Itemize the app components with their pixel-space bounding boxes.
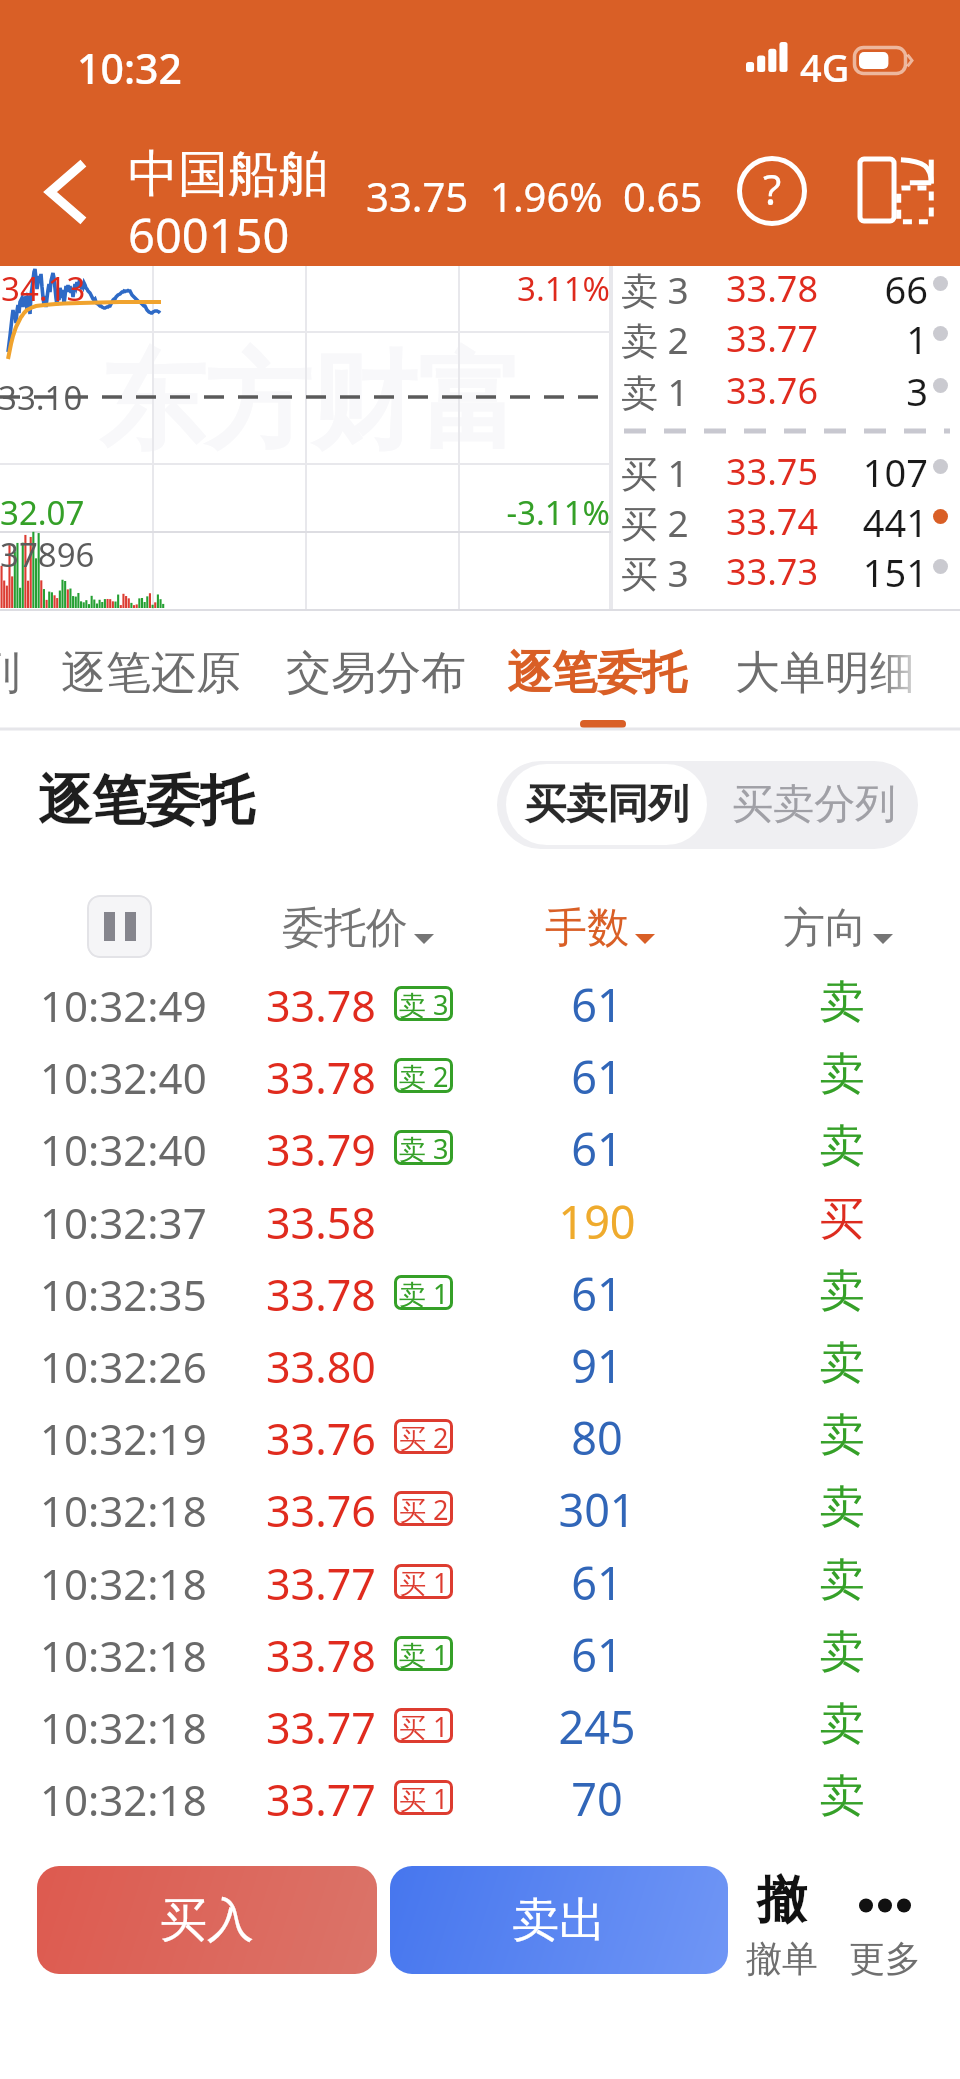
staticText: 70 [482, 1768, 712, 1829]
staticText: 61 [482, 1046, 712, 1107]
button[interactable]: 10:32:40 [0, 1039, 960, 1111]
button[interactable]: 撤 [736, 1866, 828, 1986]
staticText: 10:32:40 [40, 1121, 207, 1178]
staticText: 37896 [0, 532, 95, 577]
button[interactable]: 买 1 [611, 440, 960, 490]
staticText: ? [763, 160, 782, 217]
staticText: 33.80 [266, 1337, 376, 1396]
staticText: 卖 [727, 974, 957, 1031]
staticText: 1 [811, 313, 928, 363]
staticText: 33.78 [266, 1265, 376, 1324]
staticText: 卖 [727, 1407, 957, 1464]
button[interactable]: 10:32:26 [0, 1328, 960, 1400]
button[interactable]: 卖 2 [611, 307, 960, 357]
staticText: 卖 [727, 1696, 957, 1753]
staticText: 66 [811, 263, 928, 313]
staticText: 10:32:26 [40, 1338, 207, 1395]
staticText: 卖 [727, 1768, 957, 1825]
staticText: 卖 2 [621, 314, 689, 364]
button[interactable]: Help [724, 143, 820, 239]
button[interactable]: 方向 [723, 861, 953, 969]
staticText: 卖 [727, 1046, 957, 1103]
staticText: 33.78 [726, 264, 819, 313]
staticText: 3 [811, 365, 928, 415]
button[interactable]: 大单明细 [725, 611, 925, 731]
button[interactable]: 卖出 [390, 1866, 728, 1974]
button[interactable]: 卖 3 [611, 257, 960, 307]
staticText: 逐笔委托 [497, 645, 697, 702]
staticText: 33.73 [726, 547, 819, 596]
staticText: 301 [482, 1479, 712, 1540]
staticText: 买 2 [621, 497, 689, 547]
button[interactable]: 10:32:18 [0, 1472, 960, 1544]
staticText: 61 [482, 1118, 712, 1179]
staticText: 33.58 [266, 1193, 376, 1252]
button[interactable]: 10:32:37 [0, 1184, 960, 1256]
staticText: 撤 [736, 1869, 828, 1932]
staticText: 33.10 [0, 375, 83, 420]
staticText: 手数 [545, 902, 629, 955]
button[interactable]: 买 3 [611, 540, 960, 590]
button[interactable]: 10:32:49 [0, 967, 960, 1039]
button[interactable]: Rotate screen [848, 145, 944, 237]
staticText: 33.79 [266, 1120, 376, 1179]
staticText: 33.77 [266, 1770, 376, 1829]
staticText: 10:32:18 [40, 1627, 207, 1684]
staticText: 卖 [727, 1263, 957, 1320]
staticText: 151 [811, 546, 928, 596]
staticText: 委托价 [282, 902, 408, 955]
button[interactable]: 手数 [485, 861, 715, 969]
staticText: 33.76 [726, 366, 819, 415]
staticText: 33.77 [726, 314, 819, 363]
staticText: 33.75 [366, 169, 469, 223]
button[interactable]: 10:32:18 [0, 1617, 960, 1689]
staticText: 卖 [727, 1624, 957, 1681]
button[interactable]: 10:32:18 [0, 1761, 960, 1833]
button[interactable]: 交易分布 [276, 611, 476, 731]
button[interactable]: 10:32:40 [0, 1111, 960, 1183]
staticText: 245 [482, 1696, 712, 1757]
staticText: 61 [482, 1624, 712, 1685]
staticText: 33.74 [726, 497, 819, 546]
staticText: 3.11% [0, 266, 610, 311]
staticText: 600150 [128, 203, 290, 267]
staticText: 买卖分列 [732, 779, 896, 831]
button[interactable]: Pause [87, 895, 152, 958]
staticText: 10:32:18 [40, 1771, 207, 1828]
staticText: 买 2 [399, 1419, 449, 1454]
staticText: 33.78 [266, 976, 376, 1035]
staticText: 卖 [727, 1479, 957, 1536]
button[interactable]: 10:32:19 [0, 1400, 960, 1472]
button[interactable]: Back [20, 140, 110, 244]
staticText: 1.96% [490, 169, 603, 223]
button[interactable]: 卖 1 [611, 359, 960, 409]
staticText: 买 1 [399, 1564, 449, 1599]
button[interactable]: 10:32:18 [0, 1689, 960, 1761]
button[interactable]: 买卖分列 [709, 761, 918, 849]
staticText: 33.77 [266, 1698, 376, 1757]
button[interactable]: 10:32:18 [0, 1545, 960, 1617]
staticText: 更多 [837, 1936, 933, 1981]
button[interactable]: 列 [0, 611, 38, 731]
staticText: 32.07 [0, 490, 85, 535]
button[interactable]: 委托价 [243, 861, 473, 969]
staticText: 列 [0, 645, 38, 702]
button[interactable]: 买 2 [611, 490, 960, 540]
button[interactable]: 买入 [37, 1866, 377, 1974]
staticText: 卖 [727, 1552, 957, 1609]
staticText: 买 1 [621, 447, 689, 497]
staticText: 卖 1 [399, 1636, 449, 1671]
staticText: 东方财富 [99, 336, 523, 470]
staticText: 33.76 [266, 1481, 376, 1540]
button[interactable]: 更多 [837, 1866, 933, 1986]
staticText: 33.77 [266, 1554, 376, 1613]
staticText: 中国船舶 [128, 143, 328, 206]
staticText: 卖 3 [399, 1130, 449, 1165]
button[interactable]: 买卖同列 [506, 764, 707, 845]
staticText: -3.11% [0, 490, 610, 535]
button[interactable]: 逐笔还原 [51, 611, 251, 731]
staticText: 10:32:19 [40, 1410, 207, 1467]
button[interactable]: 逐笔委托 [497, 611, 697, 731]
button[interactable]: 10:32:35 [0, 1256, 960, 1328]
staticText: 33.78 [266, 1048, 376, 1107]
